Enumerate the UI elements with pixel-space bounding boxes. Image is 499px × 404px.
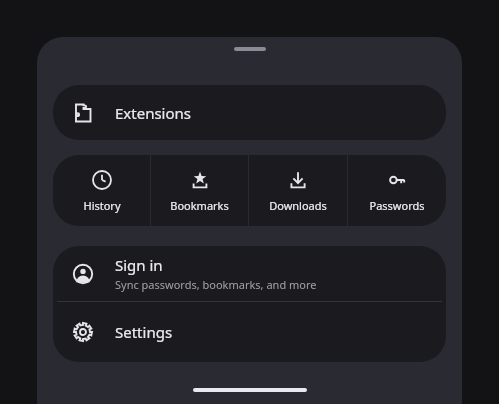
button[interactable]: Settings — [53, 302, 446, 362]
button[interactable]: History — [53, 155, 150, 226]
button[interactable]: Downloads — [249, 155, 347, 226]
staticText: Bookmarks — [170, 198, 229, 213]
staticText: Sign in — [115, 255, 163, 275]
staticText: Settings — [115, 322, 173, 342]
staticText: Passwords — [369, 198, 425, 213]
staticText: Downloads — [269, 198, 327, 213]
staticText: Sync passwords, bookmarks, and more — [115, 277, 317, 292]
button[interactable]: Extensions — [53, 85, 446, 140]
staticText: History — [83, 198, 121, 213]
button[interactable]: Passwords — [348, 155, 446, 226]
staticText: Extensions — [115, 103, 192, 123]
button[interactable]: Bookmarks — [151, 155, 248, 226]
button[interactable]: Sign in — [53, 246, 446, 301]
